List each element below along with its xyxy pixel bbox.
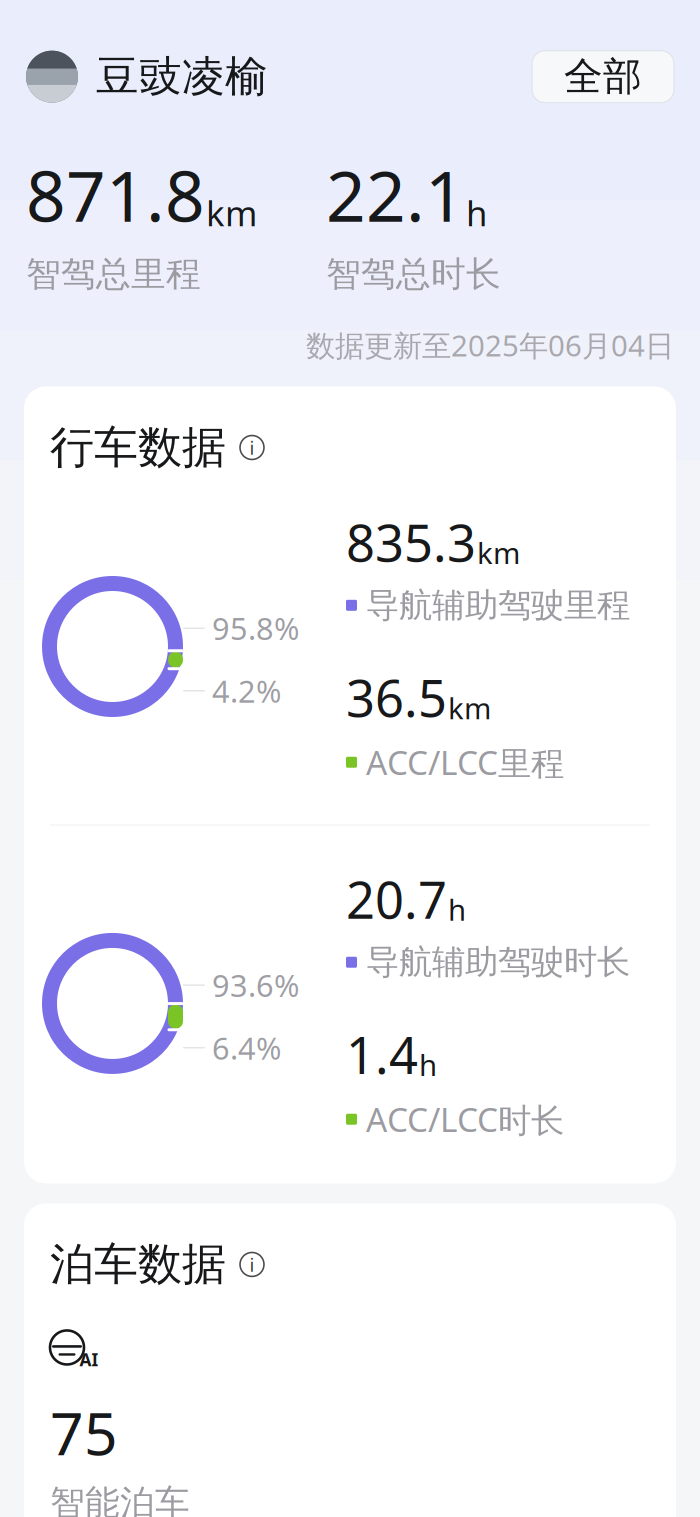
staticText: 行车数据 xyxy=(50,420,226,474)
staticText: ACC/LCC里程 xyxy=(366,740,564,784)
staticText: h xyxy=(466,190,487,236)
staticText: 20.7 xyxy=(346,865,447,933)
staticText: km xyxy=(477,533,520,572)
staticText: 871.8 xyxy=(26,149,205,241)
staticText: ACC/LCC时长 xyxy=(366,1097,564,1141)
staticText: 全部 xyxy=(564,53,642,100)
staticText: 导航辅助驾驶里程 xyxy=(366,585,630,626)
staticText: 泊车数据 xyxy=(50,1237,226,1291)
staticText: i xyxy=(249,435,254,460)
button[interactable]: 全部 xyxy=(532,51,674,103)
button[interactable]: 关于行车数据 xyxy=(236,431,268,463)
staticText: 1.4 xyxy=(346,1021,418,1088)
button[interactable]: 关于泊车数据 xyxy=(236,1248,268,1280)
staticText: 4.2% xyxy=(212,670,281,711)
staticText: 93.6% xyxy=(212,965,299,1005)
staticText: 22.1 xyxy=(326,149,465,241)
staticText: 智能泊车 xyxy=(50,1481,190,1517)
staticText: 95.8% xyxy=(212,608,299,648)
staticText: 835.3 xyxy=(346,508,476,576)
staticText: km xyxy=(206,190,257,236)
staticText: 36.5 xyxy=(346,664,447,731)
staticText: 数据更新至2025年06月04日 xyxy=(306,325,674,364)
staticText: 豆豉凌榆 xyxy=(96,50,268,103)
staticText: 智驾总里程 xyxy=(26,253,201,295)
staticText: km xyxy=(448,688,491,727)
staticText: 6.4% xyxy=(212,1027,281,1068)
staticText: h xyxy=(448,890,466,929)
staticText: AI xyxy=(79,1348,98,1371)
staticText: i xyxy=(249,1252,254,1277)
staticText: 智驾总时长 xyxy=(326,253,501,295)
staticText: h xyxy=(419,1045,437,1084)
staticText: 75 xyxy=(50,1393,118,1471)
button[interactable]: 豆豉凌榆 xyxy=(26,50,268,103)
staticText: 导航辅助驾驶时长 xyxy=(366,942,630,983)
